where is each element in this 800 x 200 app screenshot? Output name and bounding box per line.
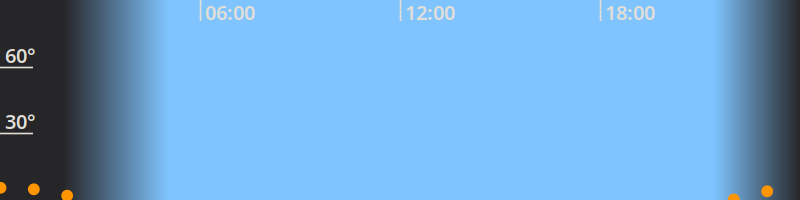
staticText: 06:00 bbox=[205, 0, 255, 26]
staticText: 12:00 bbox=[405, 0, 455, 26]
staticText: 18:00 bbox=[605, 0, 655, 26]
staticText: 60° bbox=[5, 42, 36, 69]
staticText: 30° bbox=[5, 108, 36, 135]
